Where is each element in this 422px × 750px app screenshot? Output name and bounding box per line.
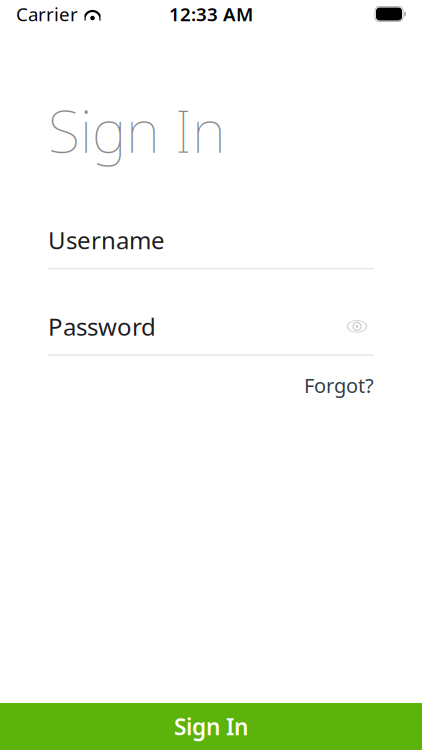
staticText: Password [48, 310, 156, 342]
button[interactable]: Forgot? [304, 368, 374, 402]
staticText: Forgot? [304, 372, 374, 398]
button[interactable]: Sign In [0, 703, 422, 750]
staticText: Carrier [16, 2, 78, 26]
staticText: Username [48, 224, 165, 256]
staticText: Sign In [48, 91, 226, 169]
staticText: Sign In [174, 711, 248, 741]
staticText: 12:33 AM [169, 2, 253, 26]
button[interactable]: Show password [340, 313, 374, 339]
